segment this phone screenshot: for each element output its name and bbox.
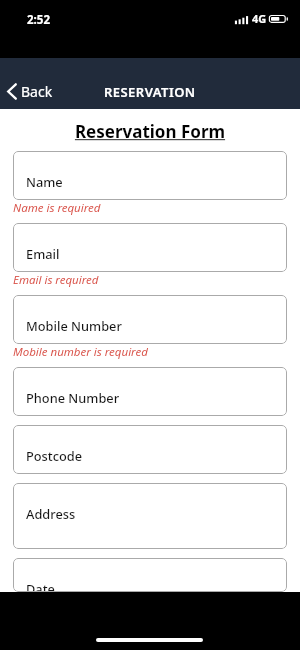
- staticText: Email is required: [13, 272, 99, 288]
- staticText: 2:52: [27, 12, 50, 28]
- staticText: Address: [26, 505, 76, 522]
- staticText: Name: [26, 173, 63, 190]
- staticText: Reservation Form: [13, 120, 287, 143]
- button[interactable]: Back: [0, 80, 61, 103]
- button[interactable]: Phone Number: [13, 367, 287, 416]
- button[interactable]: Mobile Number: [13, 295, 287, 344]
- button[interactable]: Postcode: [13, 425, 287, 474]
- other: Home indicator: [96, 638, 203, 642]
- staticText: Mobile number is required: [13, 344, 148, 360]
- staticText: RESERVATION: [104, 83, 196, 101]
- staticText: Phone Number: [26, 389, 120, 406]
- staticText: Mobile Number: [26, 317, 122, 334]
- staticText: Postcode: [26, 447, 83, 464]
- staticText: 4G: [252, 11, 267, 26]
- button[interactable]: Name: [13, 151, 287, 200]
- button[interactable]: Date: [13, 558, 287, 592]
- staticText: Email: [26, 245, 60, 262]
- staticText: Date: [26, 580, 55, 592]
- staticText: Name is required: [13, 200, 101, 216]
- staticText: Back: [21, 82, 53, 101]
- button[interactable]: Email: [13, 223, 287, 272]
- button[interactable]: Address: [13, 483, 287, 549]
